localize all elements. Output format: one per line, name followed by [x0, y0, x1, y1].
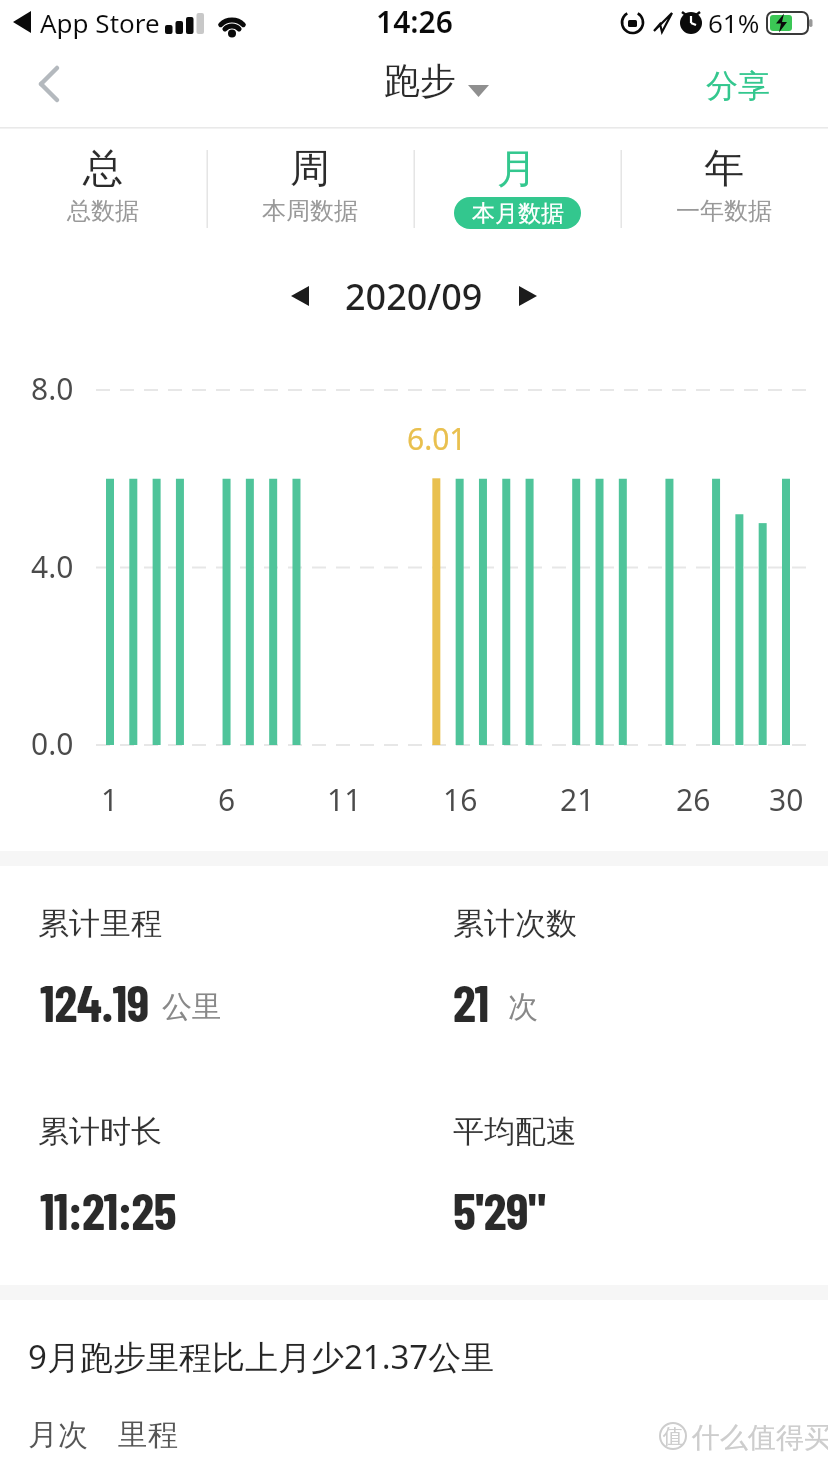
staticText: 5'29"	[453, 1178, 546, 1240]
button[interactable]: 本月数据	[454, 197, 581, 229]
button[interactable]	[270, 270, 330, 322]
staticText: 里程	[118, 1416, 178, 1454]
staticText: 11	[327, 779, 362, 820]
staticText: 6	[218, 779, 236, 820]
button[interactable]	[20, 56, 80, 112]
staticText: 什么值得买	[692, 1420, 828, 1455]
button[interactable]: 分享	[668, 60, 808, 112]
staticText: 总	[83, 143, 123, 193]
staticText: 21	[560, 779, 595, 820]
staticText: 14:26	[376, 1, 453, 42]
staticText: 4.0	[31, 546, 74, 587]
staticText: 9月跑步里程比上月少21.37公里	[28, 1334, 495, 1379]
staticText: 8.0	[31, 368, 74, 409]
staticText: 平均配速	[453, 1112, 577, 1151]
button[interactable]	[621, 140, 828, 240]
staticText: 公里	[162, 988, 222, 1026]
staticText: 年	[704, 143, 744, 193]
staticText: 分享	[706, 66, 770, 106]
staticText: 本周数据	[262, 196, 358, 226]
staticText: 0.0	[31, 723, 74, 764]
staticText: 2020/09	[345, 272, 483, 321]
staticText: 次	[508, 988, 538, 1026]
staticText: 本月数据	[472, 199, 564, 228]
staticText: 21	[453, 970, 489, 1032]
staticText: 值	[663, 1424, 683, 1449]
staticText: 6.01	[407, 418, 467, 459]
staticText: 月次	[28, 1416, 88, 1454]
staticText: 61%	[708, 5, 760, 40]
staticText: 累计里程	[38, 904, 162, 943]
staticText: 累计次数	[453, 904, 577, 943]
staticText: 月	[497, 143, 537, 193]
button[interactable]	[414, 140, 621, 240]
staticText: 26	[676, 779, 711, 820]
button[interactable]	[500, 270, 560, 322]
staticText: 累计时长	[38, 1112, 162, 1151]
staticText: 124.19	[40, 970, 149, 1032]
staticText: 30	[769, 779, 804, 820]
staticText: 一年数据	[676, 196, 772, 226]
staticText: 总数据	[67, 196, 139, 226]
button[interactable]	[0, 140, 207, 240]
staticText: 跑步	[384, 58, 456, 103]
staticText: 11:21:25	[40, 1178, 177, 1240]
staticText: 周	[290, 143, 330, 193]
staticText: App Store	[40, 5, 160, 40]
staticText: 1	[101, 779, 119, 820]
staticText: 16	[443, 779, 478, 820]
button[interactable]	[207, 140, 414, 240]
